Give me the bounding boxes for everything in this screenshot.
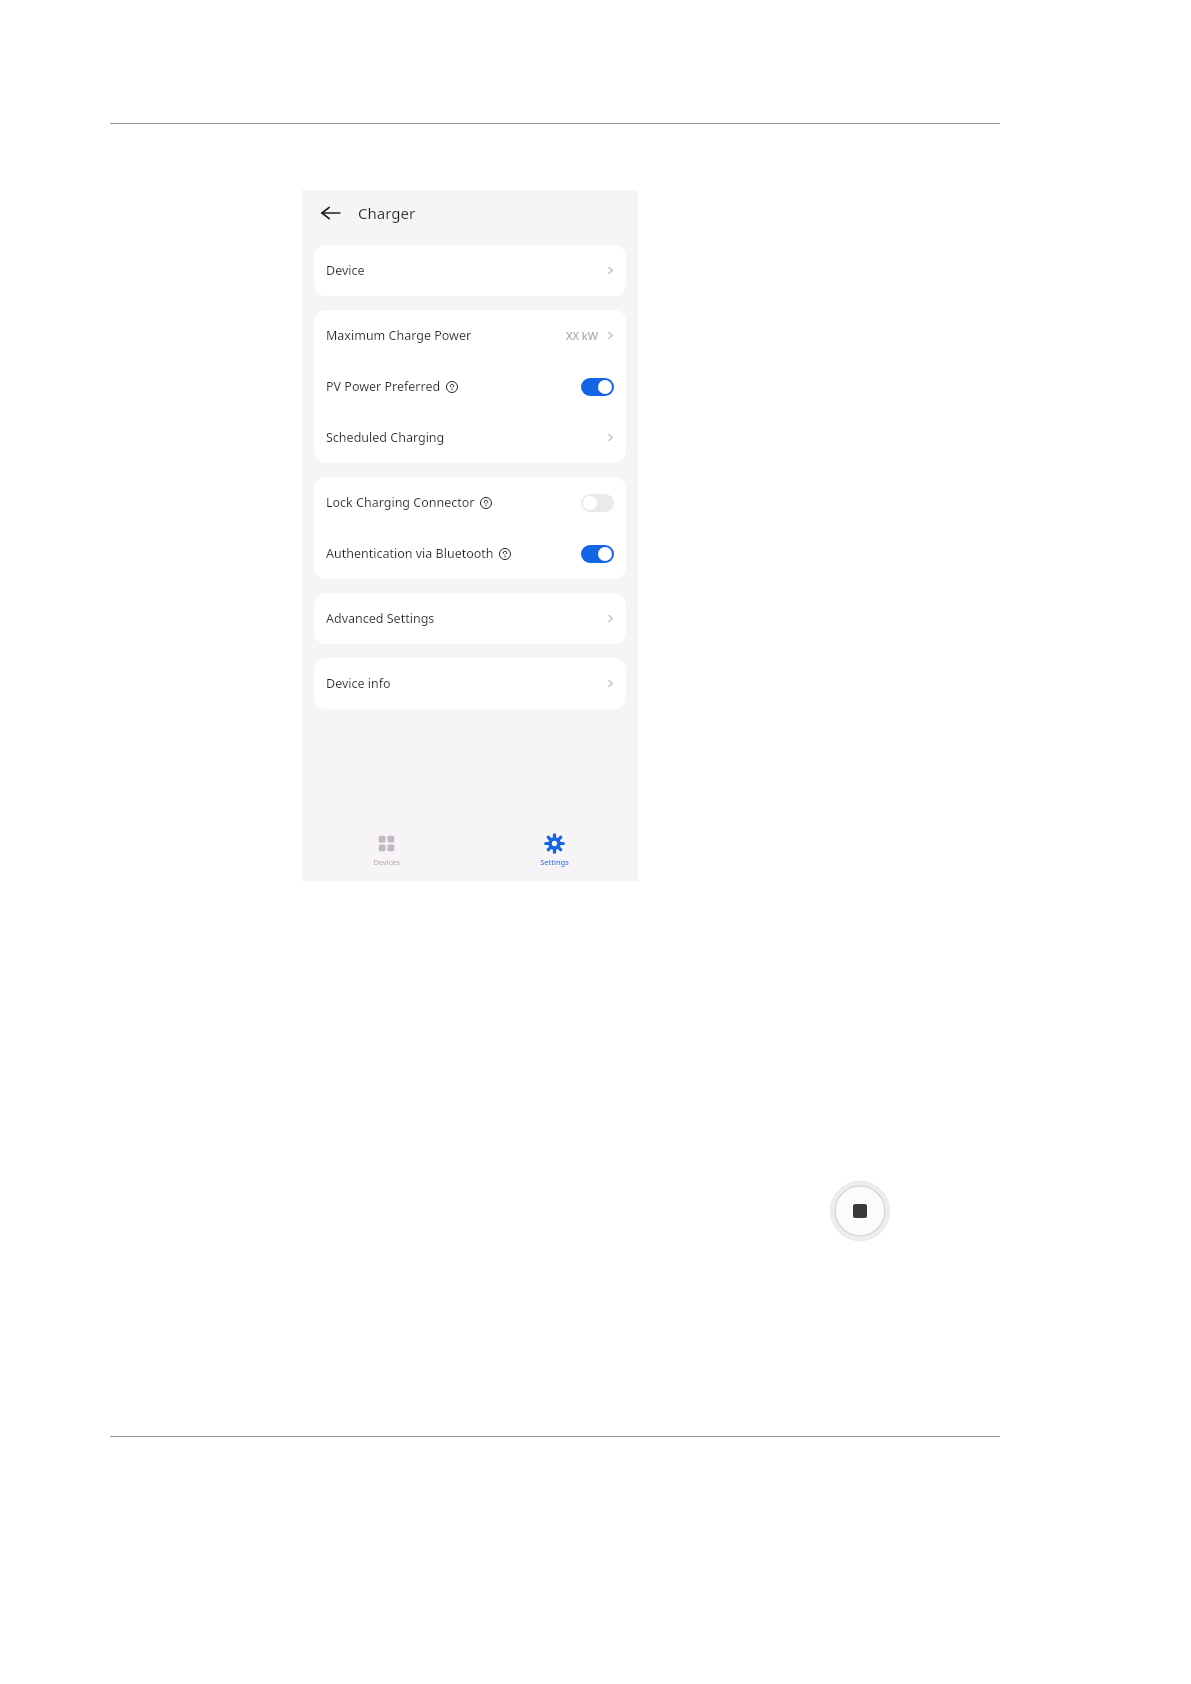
- button[interactable]: Settings: [470, 819, 638, 881]
- button[interactable]: PV Power Preferred: [314, 361, 626, 412]
- staticText: Device info: [326, 675, 391, 692]
- staticText: Advanced Settings: [326, 610, 435, 627]
- staticText: Scheduled Charging: [326, 429, 445, 446]
- staticText: Maximum Charge Power: [326, 327, 472, 344]
- button[interactable]: Stop: [853, 1204, 867, 1218]
- staticText: XX kW: [566, 328, 598, 343]
- button[interactable]: Back: [318, 200, 344, 226]
- button[interactable]: Authentication via Bluetooth: [314, 528, 626, 579]
- button[interactable]: Maximum Charge Power: [314, 310, 626, 361]
- button[interactable]: Switch on: [581, 545, 614, 563]
- staticText: Settings: [540, 857, 569, 867]
- button[interactable]: Lock Charging Connector: [314, 477, 626, 528]
- button[interactable]: Advanced Settings: [314, 593, 626, 644]
- staticText: Devices: [373, 857, 400, 867]
- staticText: Lock Charging Connector: [326, 494, 475, 511]
- button[interactable]: Device: [314, 245, 626, 296]
- staticText: Authentication via Bluetooth: [326, 545, 494, 562]
- button[interactable]: Switch off: [581, 494, 614, 512]
- button[interactable]: Switch on: [581, 378, 614, 396]
- staticText: Charger: [358, 203, 416, 223]
- button[interactable]: Device info: [314, 658, 626, 709]
- staticText: PV Power Preferred: [326, 378, 441, 395]
- button[interactable]: Scheduled Charging: [314, 412, 626, 463]
- button[interactable]: Devices: [302, 819, 470, 881]
- staticText: Device: [326, 262, 365, 279]
